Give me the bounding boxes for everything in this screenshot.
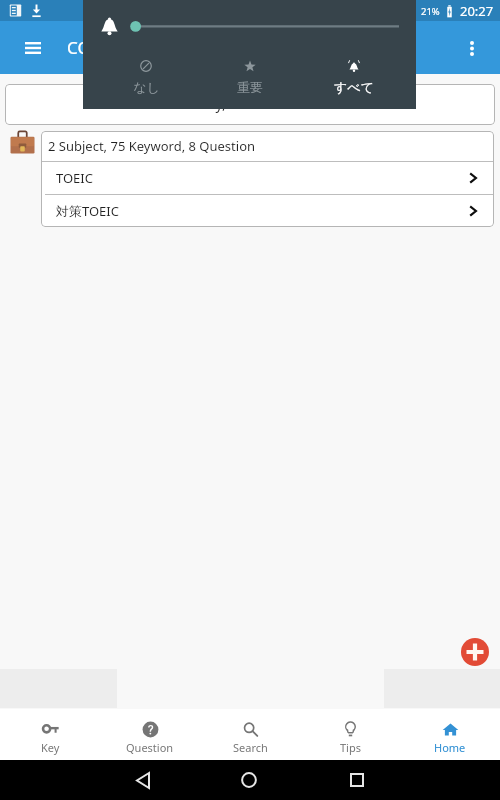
button[interactable]: Home — [400, 709, 500, 760]
button[interactable]: Add — [461, 638, 489, 666]
button[interactable]: 重要 — [210, 55, 290, 100]
staticText: Search — [233, 740, 268, 755]
staticText: I study, therefore I am. — [178, 94, 328, 113]
staticText: 20:27 — [460, 2, 494, 20]
staticText: すべて — [334, 79, 374, 95]
button[interactable]: Open navigation menu — [17, 32, 49, 64]
button[interactable]: なし — [106, 55, 186, 100]
staticText: TOEIC — [56, 169, 485, 187]
button[interactable]: すべて — [314, 55, 394, 100]
button[interactable]: Question — [100, 709, 200, 760]
button[interactable]: 対策TOEIC — [41, 195, 494, 227]
staticText: Key — [41, 740, 60, 755]
staticText: なし — [133, 79, 160, 95]
staticText: 重要 — [237, 79, 263, 95]
staticText: Tips — [340, 740, 361, 755]
staticText: COEIC — [67, 36, 117, 59]
button[interactable]: Recent apps — [337, 760, 377, 800]
button[interactable]: Key — [0, 709, 100, 760]
button[interactable]: I study, therefore I am. — [5, 84, 495, 125]
staticText: 21% — [421, 5, 440, 18]
button[interactable]: Back — [123, 760, 163, 800]
button[interactable]: Tips — [300, 709, 400, 760]
staticText: Question — [126, 740, 174, 755]
button[interactable]: Search — [200, 709, 300, 760]
button[interactable]: 2 Subject, 75 Keyword, 8 Question — [41, 131, 494, 161]
staticText: 対策TOEIC — [56, 202, 485, 220]
button[interactable]: More options — [454, 30, 490, 66]
button[interactable]: TOEIC — [41, 162, 494, 194]
staticText: 2 Subject, 75 Keyword, 8 Question — [48, 137, 256, 155]
button[interactable]: Home — [229, 760, 269, 800]
staticText: Home — [434, 740, 466, 755]
